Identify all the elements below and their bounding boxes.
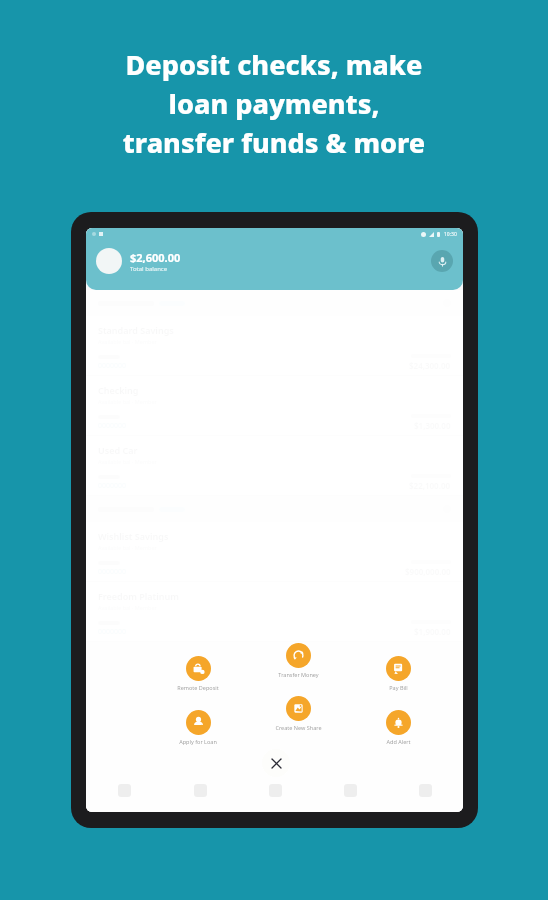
button[interactable]: Tab 2 <box>162 768 238 812</box>
staticText: Apply for Loan <box>179 738 217 745</box>
staticText: Transfer Money <box>278 671 319 678</box>
button[interactable]: Profile <box>96 248 122 274</box>
staticText: transfer funds & more <box>24 124 524 161</box>
button[interactable]: Tab 3 <box>238 768 313 812</box>
button[interactable]: Pay Bill <box>362 656 434 691</box>
button[interactable]: Tab 1 <box>86 768 162 812</box>
button[interactable]: Create New Share <box>262 696 334 731</box>
staticText: Add Alert <box>386 738 411 745</box>
button[interactable]: Add Alert <box>362 710 434 745</box>
staticText: loan payments, <box>24 85 524 122</box>
staticText: Deposit checks, make <box>24 46 524 83</box>
button[interactable]: Remote Deposit <box>162 656 234 691</box>
button[interactable]: Close <box>262 749 290 777</box>
staticText: Remote Deposit <box>177 684 219 691</box>
staticText: Create New Share <box>275 724 322 731</box>
button[interactable]: Transfer Money <box>262 643 334 678</box>
button[interactable]: Voice search <box>431 250 453 272</box>
staticText: Pay Bill <box>389 684 408 691</box>
button[interactable]: Tab 5 <box>388 768 463 812</box>
button[interactable]: Apply for Loan <box>162 710 234 745</box>
staticText: Total balance <box>130 265 168 273</box>
staticText: $2,600.00 <box>130 250 181 265</box>
staticText: 10:30 <box>444 231 457 238</box>
button[interactable]: Tab 4 <box>313 768 388 812</box>
